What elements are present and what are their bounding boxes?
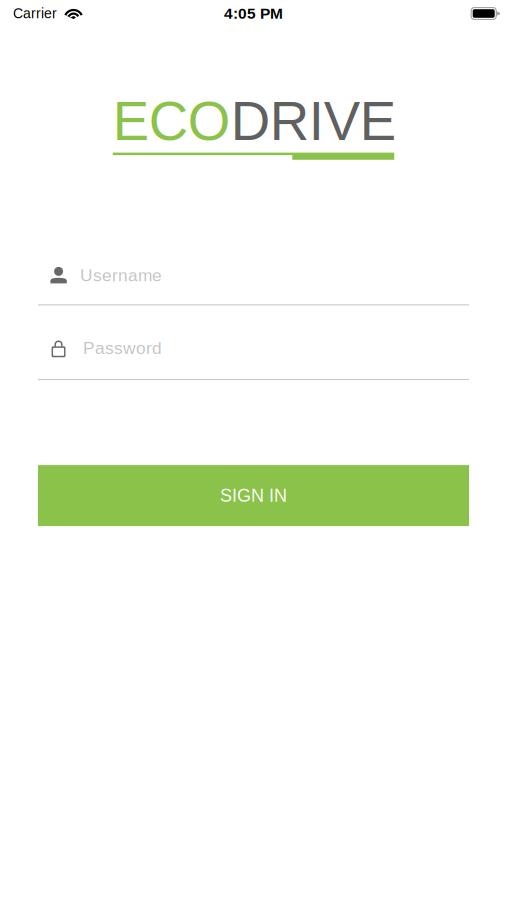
staticText: 4:05 PM xyxy=(224,5,283,22)
staticText: Password xyxy=(83,338,162,358)
staticText: DRIVE xyxy=(231,90,396,152)
staticText: ECO xyxy=(113,90,231,152)
button[interactable]: Password xyxy=(38,338,469,380)
button[interactable]: SIGN IN xyxy=(38,465,469,526)
staticText: Username xyxy=(80,266,162,285)
staticText: SIGN IN xyxy=(220,485,287,506)
button[interactable]: Username xyxy=(38,266,469,305)
staticText: Carrier xyxy=(13,6,57,21)
